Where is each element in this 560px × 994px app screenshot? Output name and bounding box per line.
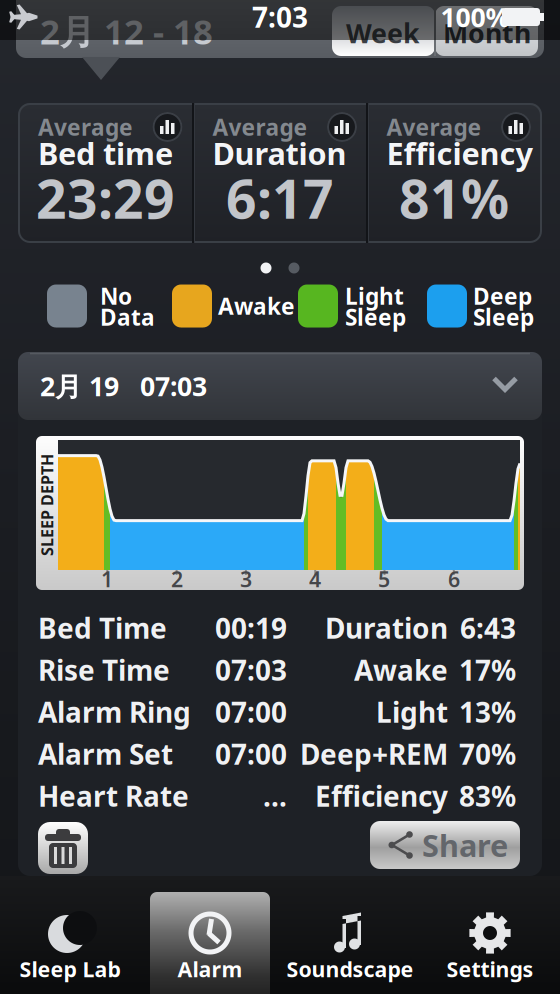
button[interactable]: Delete <box>38 822 88 874</box>
staticText: Bed Time <box>38 609 167 647</box>
staticText: Week <box>346 15 420 51</box>
staticText: 2 <box>171 565 183 593</box>
button[interactable]: Statistics <box>327 112 357 142</box>
staticText: Duration <box>325 609 448 647</box>
staticText: 2月 19 07:03 <box>40 368 207 404</box>
button[interactable]: Settings <box>420 878 560 994</box>
staticText: Average <box>38 112 133 142</box>
staticText: Light <box>376 693 448 731</box>
staticText: 6:43 <box>460 609 516 647</box>
staticText: Soundscape <box>286 955 413 983</box>
staticText: SLEEP DEPTH <box>0 494 98 516</box>
staticText: No <box>100 281 132 311</box>
staticText: 70% <box>459 735 516 773</box>
staticText: 100% <box>440 0 509 35</box>
staticText: Awake <box>218 291 295 321</box>
button[interactable]: Alarm <box>140 878 280 994</box>
staticText: Rise Time <box>38 651 170 689</box>
staticText: 2月 12 - 18 <box>40 8 213 54</box>
button[interactable]: Statistics <box>152 112 182 142</box>
button[interactable] <box>435 6 538 56</box>
staticText: Settings <box>446 955 533 983</box>
button[interactable]: Sleep Lab <box>0 878 140 994</box>
staticText: Sleep <box>345 302 406 332</box>
staticText: 3 <box>240 565 252 593</box>
staticText: Deep+REM <box>300 735 448 773</box>
staticText: Heart Rate <box>38 777 189 815</box>
staticText: Efficiency <box>315 777 448 815</box>
staticText: 6 <box>448 565 460 593</box>
staticText: Sleep <box>473 302 534 332</box>
staticText: 1 <box>101 565 113 593</box>
staticText: Duration <box>212 133 346 173</box>
staticText: 81% <box>399 163 509 233</box>
staticText: 6:17 <box>226 163 334 233</box>
staticText: Alarm <box>177 955 242 983</box>
staticText: 5 <box>378 565 390 593</box>
staticText: Bed time <box>38 133 173 173</box>
staticText: Awake <box>354 651 448 689</box>
staticText: 4 <box>309 565 321 593</box>
button[interactable] <box>332 6 435 56</box>
staticText: 83% <box>459 777 516 815</box>
button[interactable]: 2月 19 07:03 <box>18 352 542 420</box>
button[interactable]: Share <box>370 821 520 869</box>
staticText: Deep <box>473 281 532 311</box>
staticText: Sleep Lab <box>19 955 120 983</box>
staticText: Light <box>345 281 404 311</box>
staticText: Alarm Ring <box>38 693 191 731</box>
staticText: 00:19 <box>215 609 287 647</box>
staticText: 07:03 <box>215 651 287 689</box>
staticText: 07:00 <box>215 693 287 731</box>
staticText: ... <box>263 777 287 815</box>
staticText: Efficiency <box>386 133 533 173</box>
staticText: 7:03 <box>252 0 308 36</box>
staticText: Share <box>422 825 508 865</box>
staticText: 13% <box>459 693 516 731</box>
staticText: Average <box>212 112 307 142</box>
button[interactable]: Soundscape <box>280 878 420 994</box>
staticText: Alarm Set <box>38 735 173 773</box>
staticText: Average <box>386 112 481 142</box>
staticText: 23:29 <box>36 163 175 233</box>
staticText: Month <box>443 15 531 51</box>
staticText: Data <box>100 302 155 332</box>
button[interactable]: Statistics <box>501 112 531 142</box>
staticText: 17% <box>459 651 516 689</box>
staticText: 07:00 <box>215 735 287 773</box>
